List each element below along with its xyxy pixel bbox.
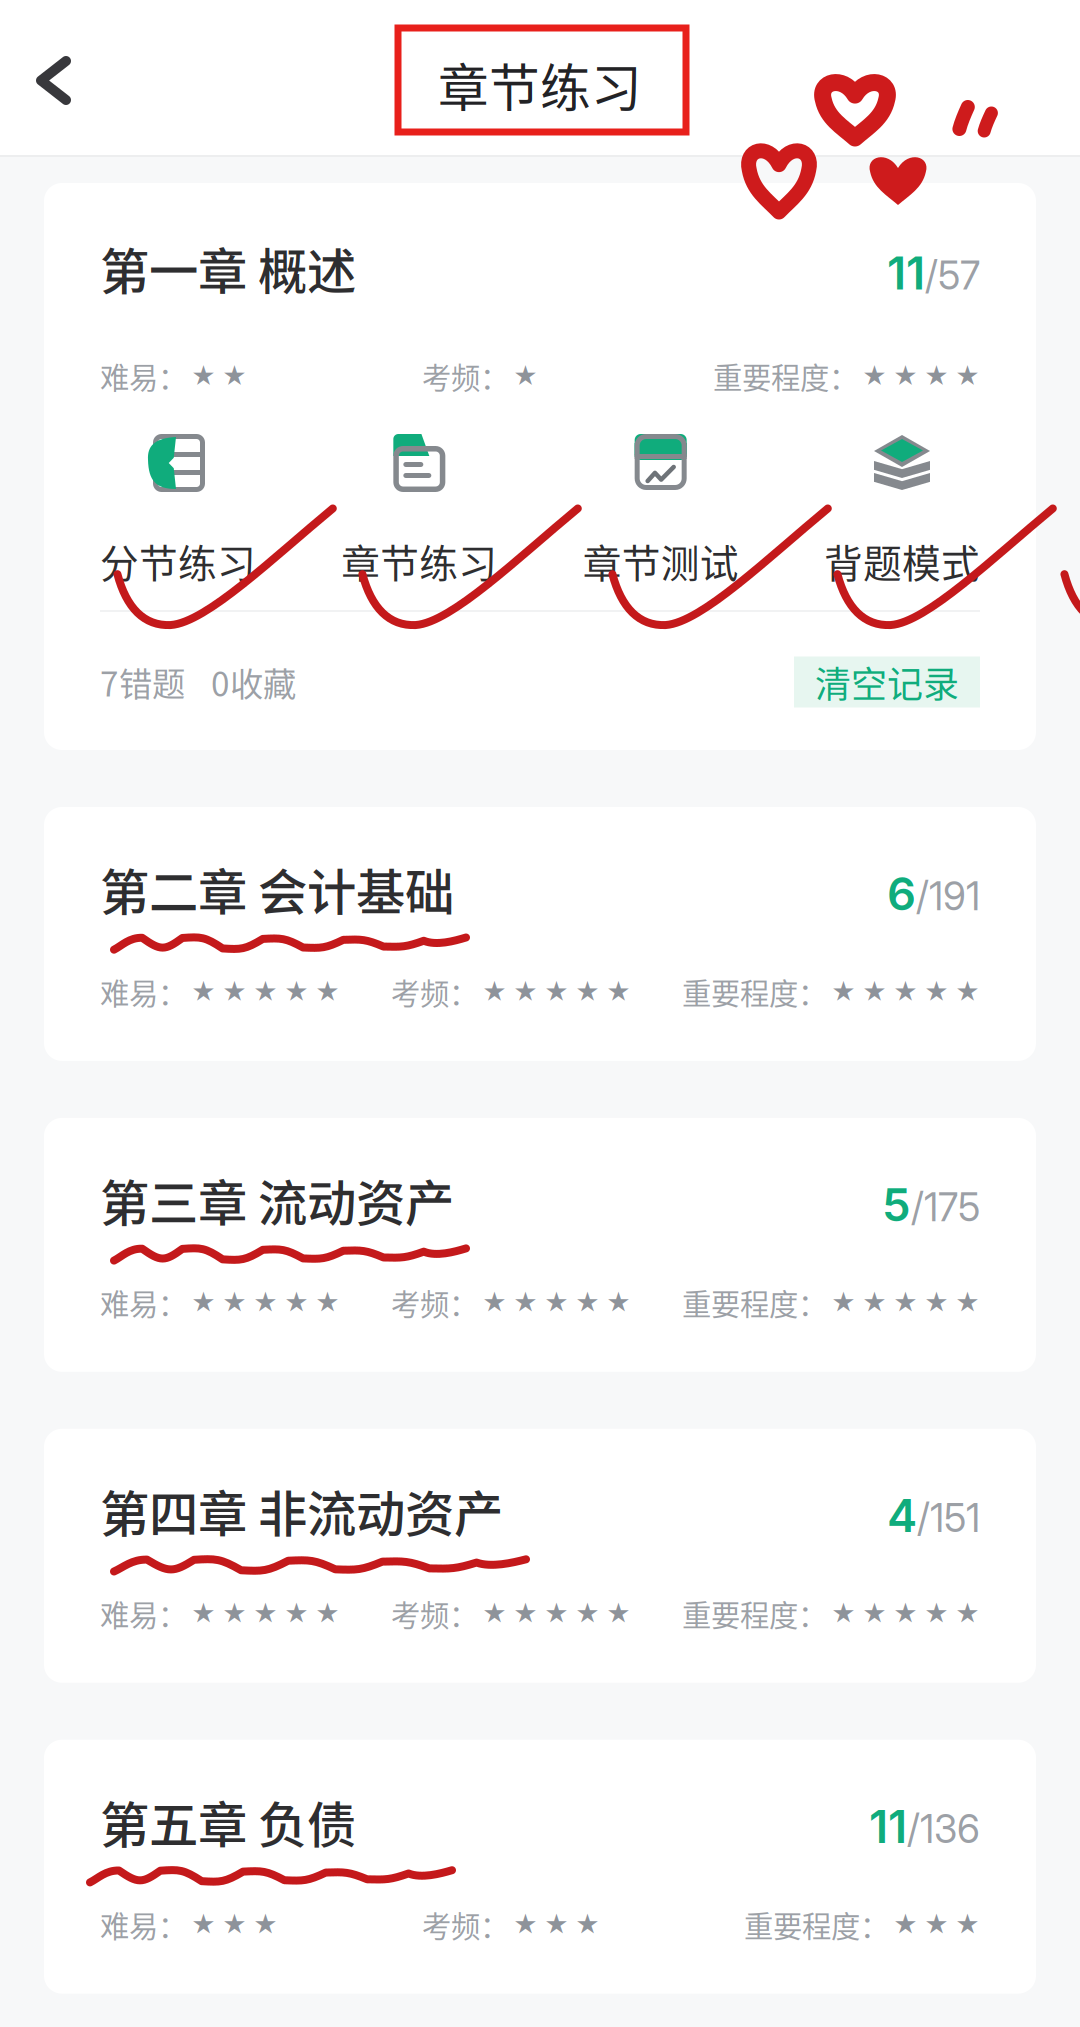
staticText: ★ — [955, 1599, 980, 1628]
button[interactable]: 分节练习 — [100, 431, 256, 583]
staticText: 第四章 非流动资产 — [100, 1475, 503, 1546]
staticText: ★ — [862, 361, 887, 390]
staticText: ★ — [575, 977, 600, 1006]
staticText: ★ — [222, 361, 247, 390]
staticText: ★ — [893, 1288, 918, 1317]
staticText: ★ — [544, 1599, 569, 1628]
staticText: ★ — [315, 1599, 340, 1628]
staticText: 第五章 负债 — [100, 1786, 356, 1857]
staticText: ★ — [924, 1599, 949, 1628]
button[interactable]: 清空记录 — [794, 656, 980, 707]
staticText: ★ — [606, 1288, 631, 1317]
button[interactable]: 章节练习 — [341, 431, 497, 583]
staticText: ★ — [315, 1288, 340, 1317]
staticText: ★ — [955, 977, 980, 1006]
staticText: ★ — [191, 361, 216, 390]
staticText: ★ — [924, 1288, 949, 1317]
staticText: ★ — [253, 977, 278, 1006]
staticText: 难易： — [100, 1281, 187, 1324]
staticText: 考频： — [391, 1592, 478, 1635]
staticText: ★ — [513, 361, 538, 390]
staticText: ★ — [191, 977, 216, 1006]
staticText: 11 — [887, 246, 925, 300]
staticText: 重要程度： — [682, 1592, 827, 1635]
staticText: ★ — [315, 977, 340, 1006]
staticText: 第一章 概述 — [100, 232, 356, 304]
staticText: ★ — [955, 1910, 980, 1939]
staticText: ★ — [222, 1288, 247, 1317]
staticText: ★ — [924, 977, 949, 1006]
staticText: ★ — [955, 361, 980, 390]
button[interactable]: 第五章 负债 — [44, 1740, 1036, 1994]
staticText: ★ — [606, 977, 631, 1006]
staticText: 6 — [887, 866, 916, 921]
staticText: ★ — [191, 1288, 216, 1317]
staticText: ★ — [253, 1910, 278, 1939]
button[interactable]: Back — [0, 0, 114, 155]
staticText: 难易： — [100, 1903, 187, 1946]
staticText: ★ — [893, 1910, 918, 1939]
button[interactable]: 章节测试 — [583, 431, 739, 583]
staticText: 考频： — [391, 1281, 478, 1324]
staticText: ★ — [862, 1599, 887, 1628]
staticText: 章节练习 — [341, 533, 497, 589]
staticText: ★ — [831, 977, 856, 1006]
staticText: 考频： — [422, 355, 509, 397]
staticText: ★ — [253, 1599, 278, 1628]
button[interactable]: 第二章 会计基础 — [44, 807, 1036, 1061]
staticText: ★ — [222, 977, 247, 1006]
button[interactable]: 第三章 流动资产 — [44, 1118, 1036, 1372]
staticText: ★ — [284, 977, 309, 1006]
staticText: ★ — [191, 1910, 216, 1939]
staticText: 重要程度： — [682, 1281, 827, 1324]
staticText: 第三章 流动资产 — [100, 1164, 454, 1235]
staticText: ★ — [513, 1288, 538, 1317]
staticText: ★ — [191, 1599, 216, 1628]
staticText: 0收藏 — [211, 658, 296, 706]
button[interactable]: 第一章 概述 — [44, 183, 1036, 750]
staticText: ★ — [253, 1288, 278, 1317]
staticText: 重要程度： — [744, 1903, 889, 1946]
staticText: ★ — [606, 1599, 631, 1628]
staticText: ★ — [284, 1288, 309, 1317]
staticText: ★ — [893, 1599, 918, 1628]
staticText: ★ — [575, 1288, 600, 1317]
staticText: 背题模式 — [824, 533, 980, 589]
staticText: 考频： — [422, 1903, 509, 1946]
staticText: /151 — [917, 1495, 980, 1541]
button[interactable]: 背题模式 — [824, 431, 980, 583]
staticText: ★ — [222, 1599, 247, 1628]
staticText: ★ — [513, 1599, 538, 1628]
staticText: /136 — [907, 1805, 980, 1852]
staticText: 重要程度： — [713, 355, 858, 397]
staticText: /191 — [916, 873, 980, 920]
staticText: 章节测试 — [583, 533, 739, 589]
staticText: 章节练习 — [438, 48, 642, 121]
button[interactable]: 第四章 非流动资产 — [44, 1429, 1036, 1683]
staticText: 7错题 — [100, 658, 185, 706]
staticText: 第二章 会计基础 — [100, 853, 454, 924]
staticText: ★ — [544, 977, 569, 1006]
staticText: ★ — [831, 1288, 856, 1317]
staticText: ★ — [284, 1599, 309, 1628]
staticText: 重要程度： — [682, 970, 827, 1013]
staticText: ★ — [513, 1910, 538, 1939]
staticText: ★ — [862, 1288, 887, 1317]
staticText: ★ — [482, 1288, 507, 1317]
staticText: ★ — [222, 1910, 247, 1939]
staticText: ★ — [575, 1910, 600, 1939]
staticText: 4 — [887, 1488, 917, 1543]
staticText: ★ — [924, 1910, 949, 1939]
staticText: 5 — [882, 1177, 911, 1232]
staticText: /175 — [911, 1184, 980, 1230]
staticText: 分节练习 — [100, 533, 256, 589]
staticText: ★ — [575, 1599, 600, 1628]
staticText: ★ — [544, 1288, 569, 1317]
staticText: ★ — [893, 361, 918, 390]
staticText: ★ — [862, 977, 887, 1006]
staticText: ★ — [482, 1599, 507, 1628]
staticText: ★ — [893, 977, 918, 1006]
staticText: 考频： — [391, 970, 478, 1013]
staticText: ★ — [955, 1288, 980, 1317]
staticText: 11 — [869, 1799, 907, 1854]
